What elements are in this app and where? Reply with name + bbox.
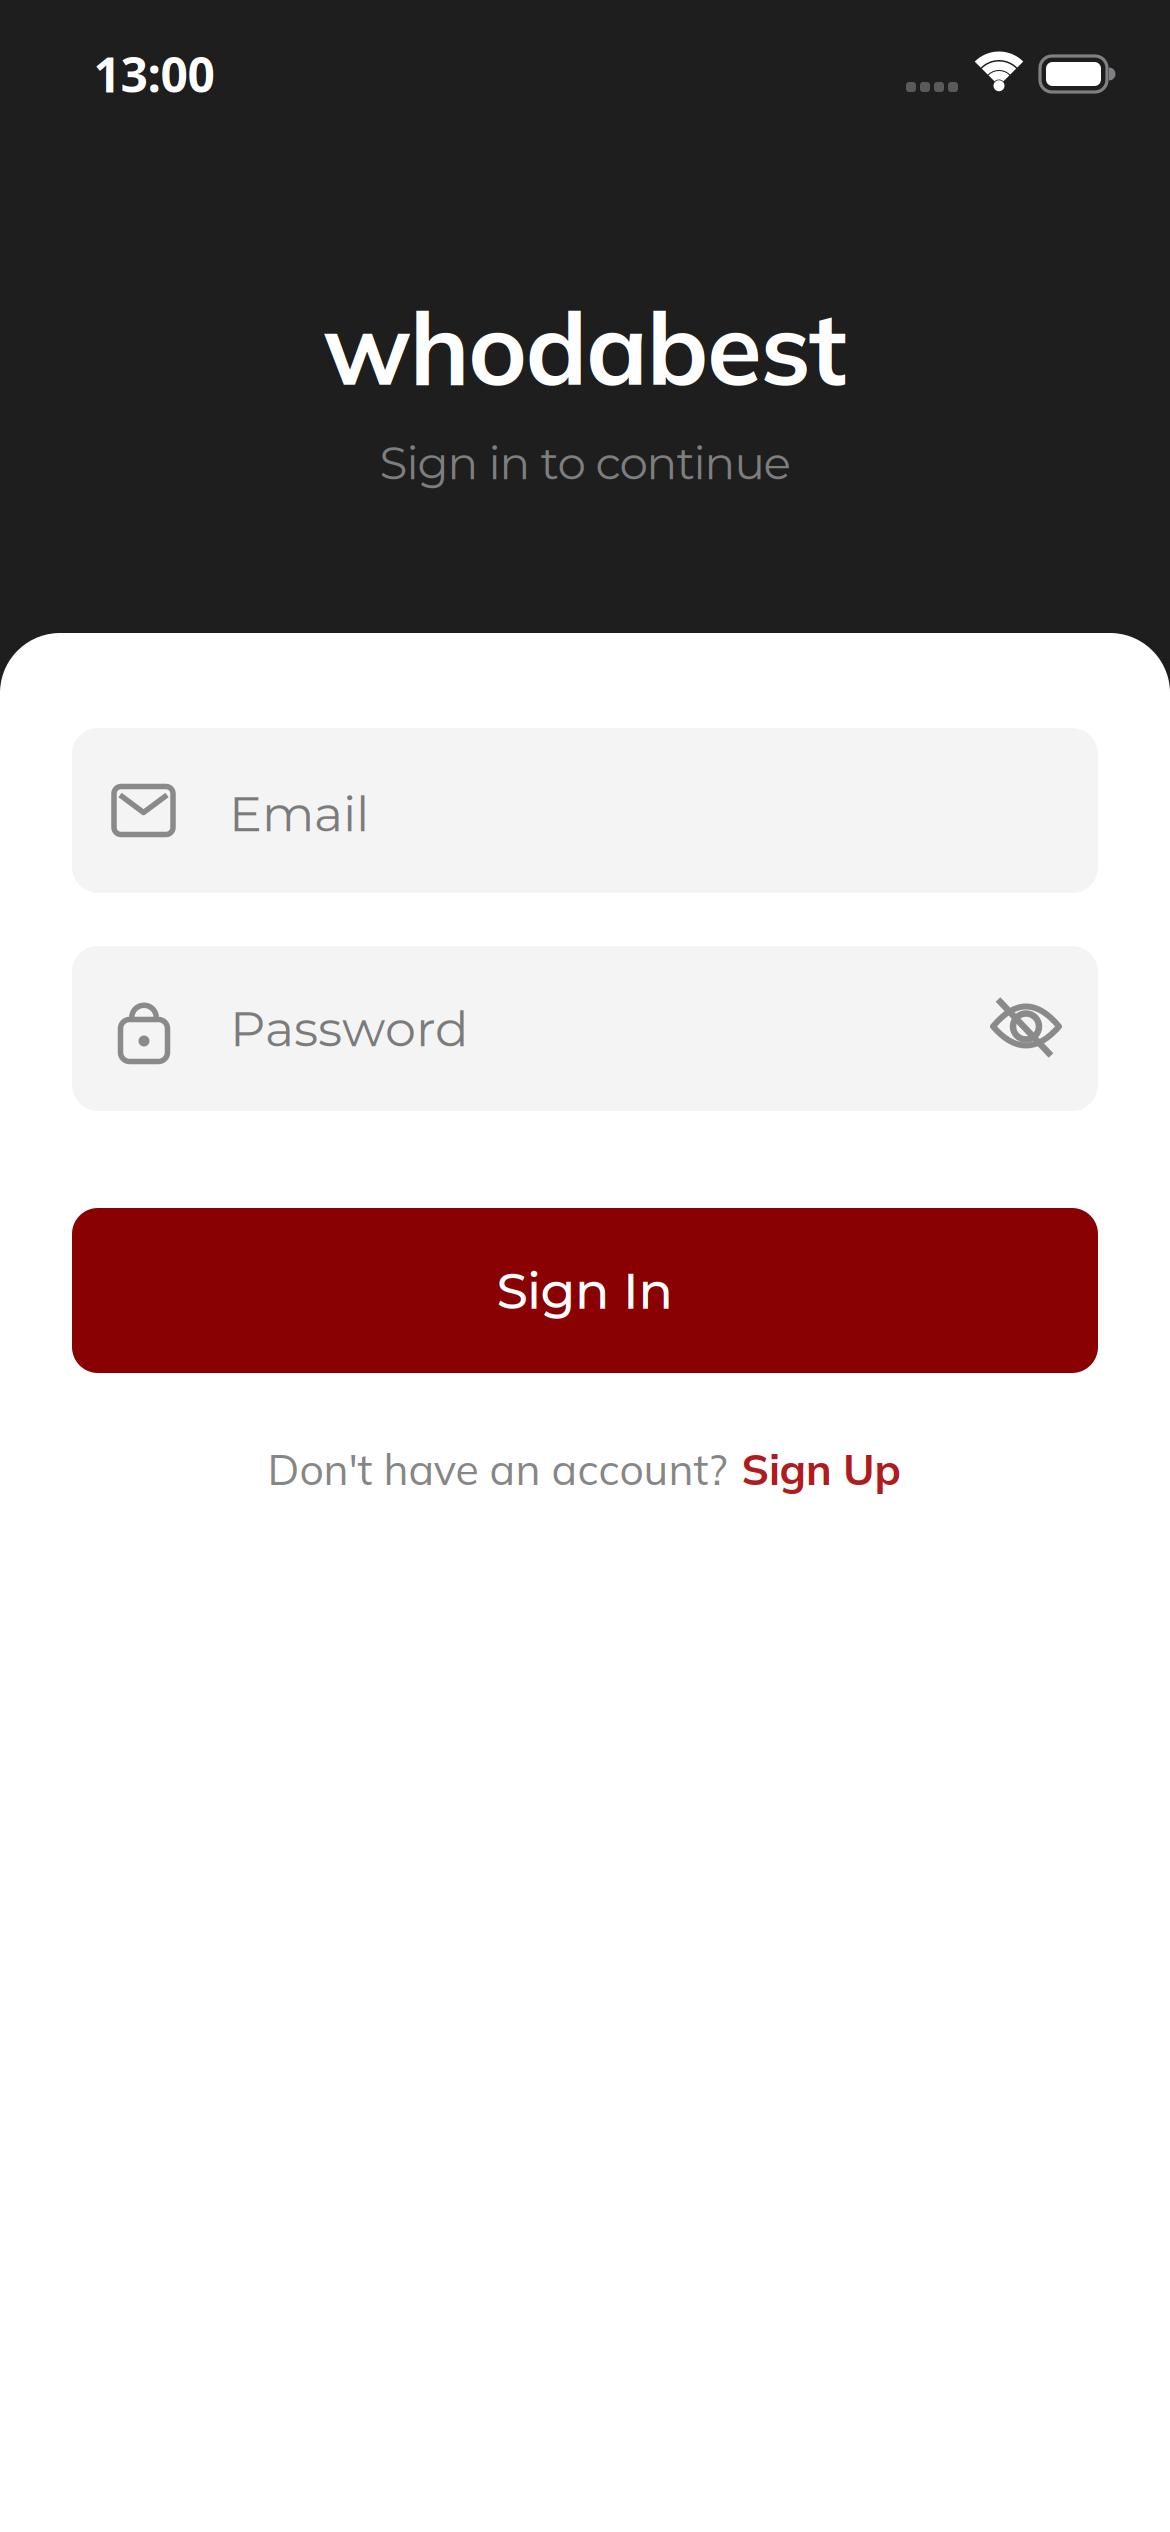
staticText: Email — [229, 783, 369, 843]
staticText: Sign In — [496, 1260, 673, 1321]
button[interactable]: Sign Up — [741, 1442, 900, 1496]
staticText: whodabest — [323, 284, 847, 410]
button[interactable]: Password — [72, 946, 1098, 1111]
button[interactable]: Show password — [992, 998, 1060, 1056]
staticText: 13:00 — [93, 42, 214, 106]
staticText: Password — [230, 998, 468, 1058]
button[interactable]: Sign In — [72, 1208, 1098, 1373]
button[interactable]: Email — [72, 728, 1098, 893]
staticText: Sign in to continue — [379, 435, 790, 491]
staticText: Don't have an account? — [267, 1442, 727, 1496]
staticText: Sign Up — [741, 1442, 900, 1496]
